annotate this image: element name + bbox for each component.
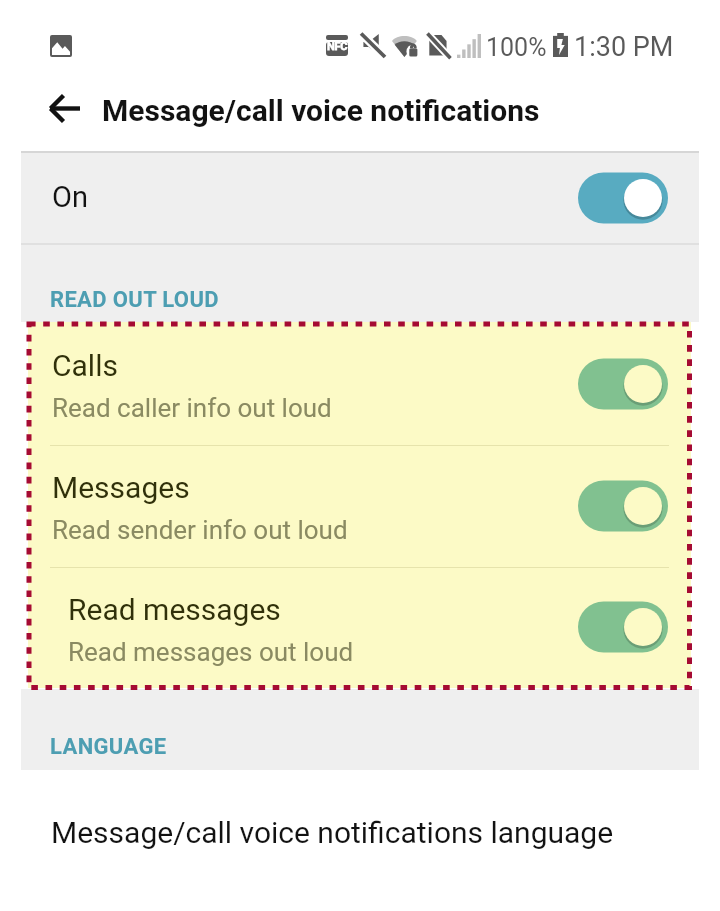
staticText: 1:30 PM — [574, 31, 674, 63]
staticText: Messages — [52, 470, 190, 505]
button[interactable]: Toggle — [577, 479, 669, 533]
staticText: Read caller info out loud — [52, 393, 332, 423]
button[interactable]: Calls — [28, 322, 691, 445]
staticText: Read messages out loud — [68, 637, 354, 667]
staticText: READ OUT LOUD — [50, 287, 219, 313]
staticText: Read sender info out loud — [52, 515, 348, 545]
button[interactable]: Toggle — [577, 600, 669, 654]
staticText: LANGUAGE — [50, 734, 167, 760]
button[interactable]: Messages — [28, 444, 691, 567]
button[interactable]: Message/call voice notifications languag… — [21, 790, 699, 876]
staticText: Read messages — [68, 592, 281, 627]
button[interactable]: Read messages — [28, 566, 691, 687]
staticText: Calls — [52, 348, 118, 383]
staticText: On — [52, 180, 88, 214]
button[interactable]: Toggle — [577, 171, 669, 225]
button[interactable]: Toggle — [577, 357, 669, 411]
staticText: Message/call voice notifications — [102, 93, 540, 128]
button[interactable]: Back — [24, 78, 104, 139]
staticText: 100% — [486, 33, 547, 62]
button[interactable]: On — [21, 153, 699, 243]
staticText: NFC — [325, 40, 349, 53]
staticText: Message/call voice notifications languag… — [51, 815, 614, 850]
